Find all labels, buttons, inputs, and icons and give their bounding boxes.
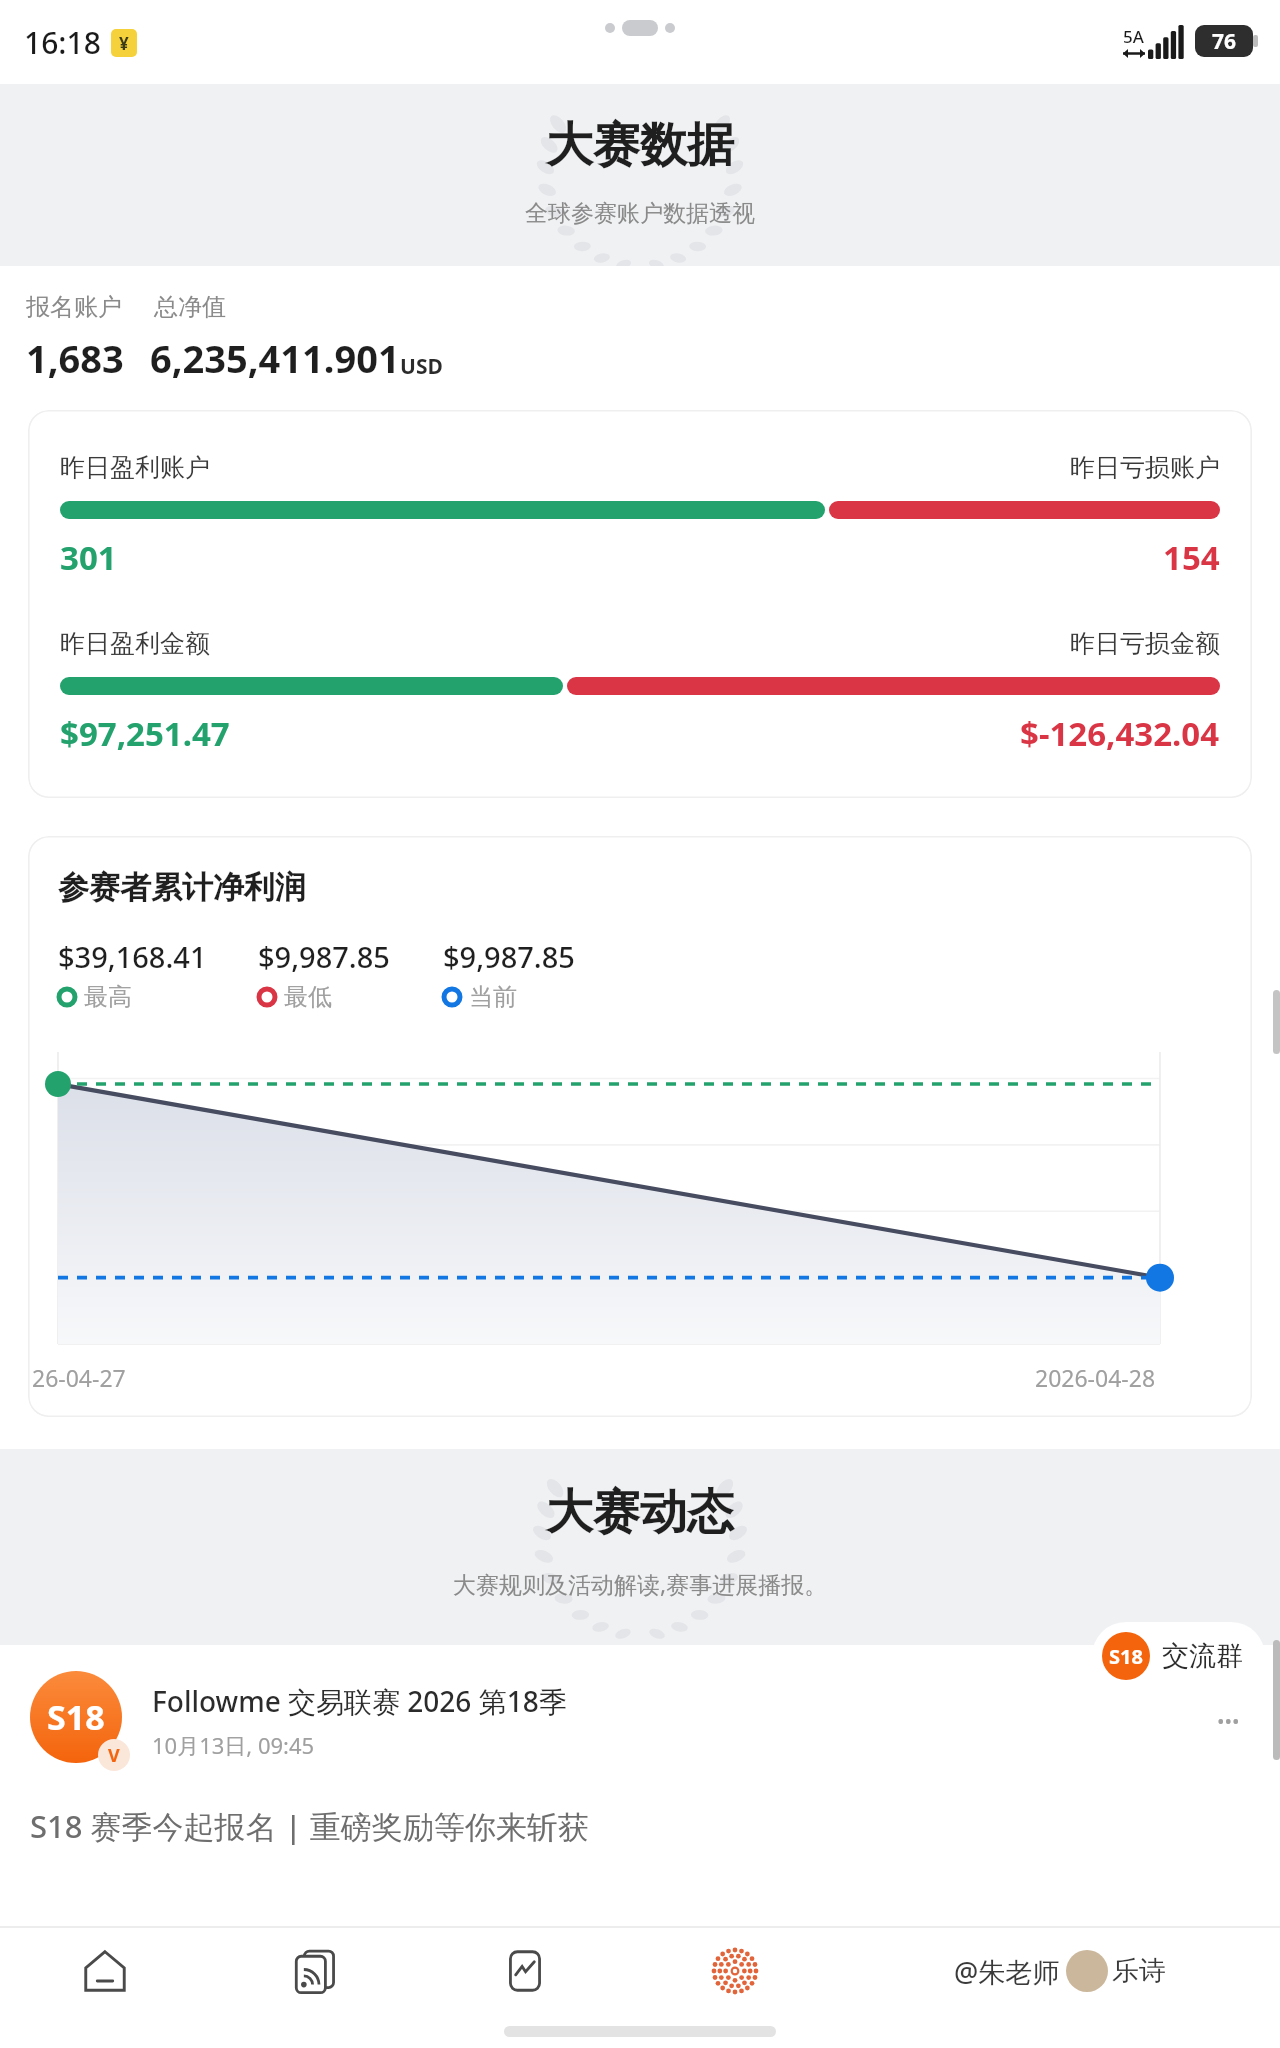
button[interactable]: Profile <box>840 1928 1280 2014</box>
staticText: 参赛者累计净利润 <box>58 868 306 907</box>
staticText: 5A <box>1123 25 1144 48</box>
button[interactable]: More options <box>1206 1699 1250 1743</box>
staticText: 交流群 <box>1162 1639 1243 1673</box>
staticText: 昨日亏损金额 <box>1070 628 1220 659</box>
staticText: ¥ <box>119 32 129 55</box>
staticText: 1,683 <box>26 332 124 384</box>
staticText: 最低 <box>284 982 332 1012</box>
staticText: @朱老师 <box>954 1953 1060 1990</box>
button[interactable]: Discover <box>630 1928 840 2014</box>
staticText: 最高 <box>84 982 132 1012</box>
button[interactable]: S18 <box>1092 1622 1265 1690</box>
staticText: $97,251.47 <box>60 711 230 756</box>
staticText: 26-04-27 <box>32 1362 126 1393</box>
staticText: ••• <box>1217 1708 1240 1735</box>
button[interactable]: Home <box>0 1928 210 2014</box>
staticText: 16:18 <box>24 22 101 63</box>
staticText: S18 赛季今起报名 | 重磅奖励等你来斩获 <box>30 1805 589 1847</box>
staticText: S18 <box>1109 1643 1143 1670</box>
staticText: 当前 <box>469 982 517 1012</box>
staticText: V <box>108 1743 120 1768</box>
staticText: 全球参赛账户数据透视 <box>525 199 755 228</box>
button[interactable]: S18 <box>0 1645 1280 1867</box>
staticText: S18 <box>47 1694 105 1740</box>
staticText: 大赛动态 <box>546 1483 734 1542</box>
staticText: 昨日盈利账户 <box>60 452 210 483</box>
button[interactable]: Market <box>420 1928 630 2014</box>
staticText: 2026-04-28 <box>1035 1362 1156 1393</box>
staticText: $9,987.85 <box>443 937 575 976</box>
staticText: 大赛规则及活动解读,赛事进展播报。 <box>453 1568 828 1599</box>
staticText: 乐诗 <box>1112 1954 1166 1988</box>
staticText: 昨日亏损账户 <box>1070 452 1220 483</box>
staticText: 总净值 <box>154 292 226 322</box>
staticText: $9,987.85 <box>258 937 390 976</box>
staticText: 昨日盈利金额 <box>60 628 210 659</box>
staticText: 报名账户 <box>26 292 122 322</box>
staticText: $-126,432.04 <box>1020 711 1220 756</box>
staticText: 154 <box>1163 535 1220 580</box>
staticText: 10月13日, 09:45 <box>152 1730 315 1760</box>
staticText: 大赛数据 <box>546 116 734 175</box>
staticText: $39,168.41 <box>58 937 207 976</box>
staticText: USD <box>400 352 443 381</box>
staticText: Followme 交易联赛 2026 第18季 <box>152 1682 567 1720</box>
staticText: 76 <box>1212 27 1237 56</box>
button[interactable]: Feed <box>210 1928 420 2014</box>
staticText: 301 <box>60 535 117 580</box>
staticText: 6,235,411.901 <box>150 332 400 384</box>
